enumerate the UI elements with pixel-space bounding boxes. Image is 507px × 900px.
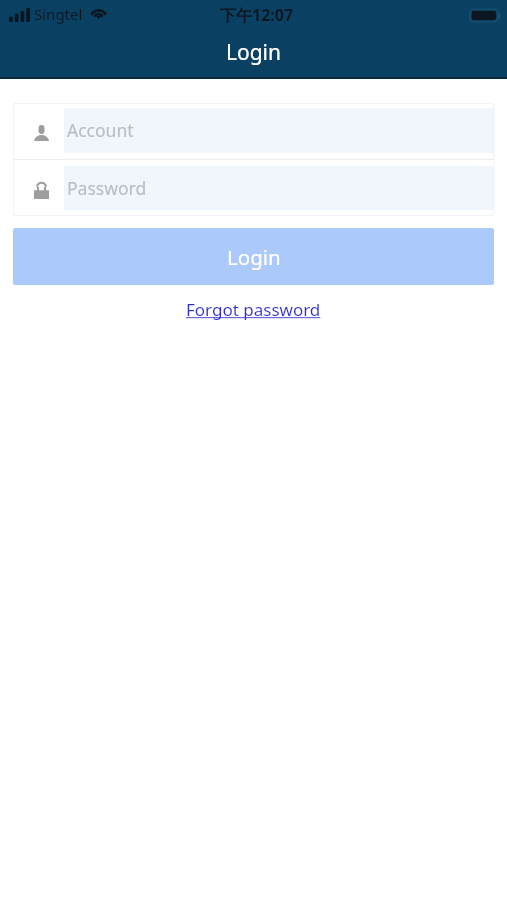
button[interactable]: Password bbox=[13, 160, 494, 216]
button[interactable]: Account bbox=[13, 103, 494, 159]
staticText: Singtel bbox=[34, 4, 83, 24]
staticText: Account bbox=[67, 118, 134, 142]
button[interactable]: Login bbox=[13, 228, 494, 285]
staticText: Login bbox=[226, 38, 282, 67]
staticText: Password bbox=[67, 176, 147, 200]
other: Account bbox=[18, 125, 64, 141]
staticText: Login bbox=[227, 243, 281, 271]
other: Password bbox=[18, 182, 64, 199]
button[interactable]: Forgot password bbox=[180, 297, 327, 322]
staticText: 下午12:07 bbox=[220, 4, 294, 26]
staticText: Forgot password bbox=[186, 298, 321, 321]
